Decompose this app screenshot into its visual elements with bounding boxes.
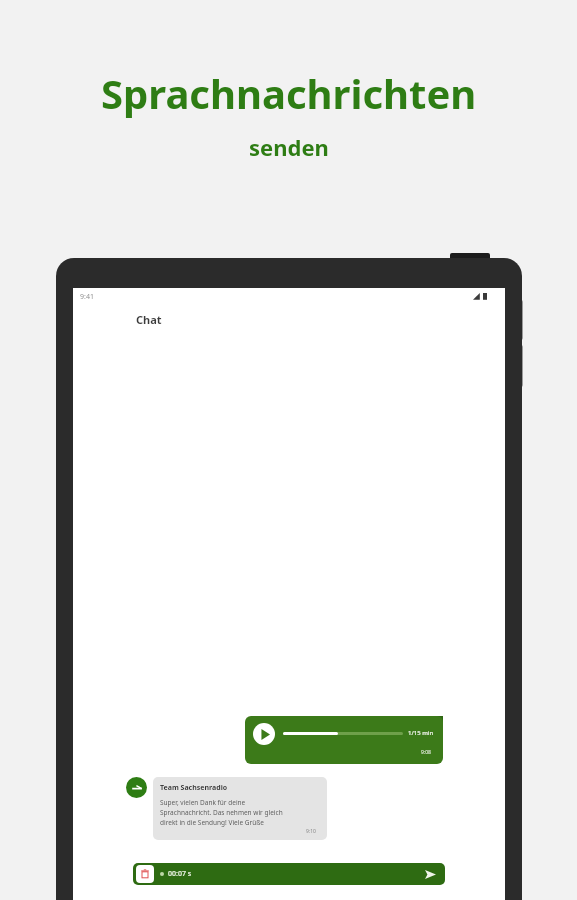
- button[interactable]: Delete recording: [133, 863, 445, 885]
- button[interactable]: Chat: [136, 312, 162, 327]
- staticText: Sprachnachrichten: [101, 66, 477, 120]
- staticText: Team Sachsenradio: [160, 783, 228, 793]
- button[interactable]: Team Sachsenradio: [126, 777, 327, 840]
- staticText: Super, vielen Dank für deine Sprachnachr…: [160, 798, 283, 827]
- button[interactable]: Play voice message: [253, 723, 275, 745]
- staticText: 9:08: [421, 749, 431, 756]
- staticText: senden: [249, 132, 329, 162]
- staticText: 9:10: [306, 828, 316, 835]
- staticText: 9:41: [80, 292, 94, 302]
- button[interactable]: Play voice message: [245, 716, 443, 764]
- staticText: 1/15 min: [408, 729, 434, 737]
- staticText: 00:07 s: [168, 869, 192, 879]
- button[interactable]: Delete recording: [136, 865, 154, 883]
- button[interactable]: Send voice message: [421, 865, 439, 883]
